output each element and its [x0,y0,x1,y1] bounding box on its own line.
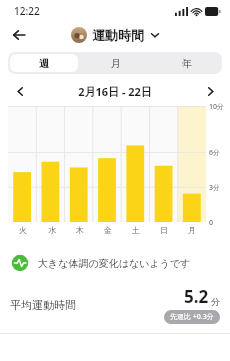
staticText: 年 [182,57,192,70]
staticText: 分 [211,296,220,307]
staticText: 12:22 [14,4,40,18]
staticText: 平均運動時間 [10,298,76,312]
button[interactable]: 大きな体調の変化はないようです [10,253,220,273]
staticText: 月 [111,57,121,70]
staticText: 日 [160,225,168,235]
staticText: 運動時間 [92,27,144,43]
button[interactable]: Previous week [10,81,30,101]
staticText: 0 [209,218,214,228]
button[interactable]: 月 [82,54,149,72]
staticText: 木 [76,225,84,235]
staticText: 3分 [209,183,221,193]
button[interactable]: 年 [153,54,220,72]
button[interactable]: Back [6,22,32,48]
button[interactable]: Next week [200,81,220,101]
staticText: 週 [39,57,49,70]
staticText: 火 [19,225,27,235]
staticText: 月 [188,225,196,235]
staticText: 2月16日 - 22日 [78,84,152,99]
staticText: 5.2 [184,285,209,308]
staticText: 先週比 +0.3分 [170,312,214,322]
button[interactable]: 運動時間 [67,25,164,45]
staticText: 土 [132,225,140,235]
staticText: 10分 [209,102,225,112]
staticText: 金 [104,225,112,235]
button[interactable]: 平均運動時間 [10,285,220,324]
staticText: 水 [48,225,56,235]
button[interactable]: 週 [10,54,78,72]
staticText: 大きな体調の変化はないようです [38,257,191,270]
staticText: 6分 [209,148,221,158]
